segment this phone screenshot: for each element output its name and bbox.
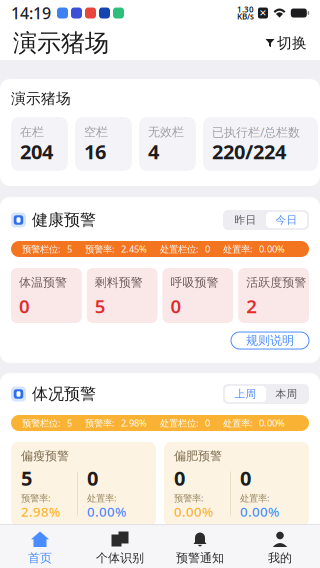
staticText: 220/224 bbox=[212, 138, 286, 165]
staticText: 预警率: bbox=[85, 417, 115, 429]
staticText: 处置栏位: bbox=[160, 417, 199, 429]
staticText: 2.45% bbox=[121, 243, 147, 255]
staticText: 预警栏位: bbox=[22, 243, 61, 255]
staticText: 规则说明 bbox=[246, 333, 294, 348]
staticText: 2.98% bbox=[121, 417, 147, 429]
button[interactable]: 切换 bbox=[265, 36, 307, 50]
staticText: 0.00% bbox=[174, 503, 213, 520]
staticText: 5 bbox=[67, 243, 72, 255]
staticText: 在栏 bbox=[20, 125, 44, 139]
staticText: 0 bbox=[205, 417, 210, 429]
staticText: 空栏 bbox=[84, 125, 108, 139]
staticText: 个体识别 bbox=[96, 551, 144, 565]
button[interactable]: 首页 bbox=[0, 525, 80, 568]
button[interactable]: 我的 bbox=[240, 525, 320, 568]
button[interactable]: 本周 bbox=[266, 386, 307, 402]
staticText: 无效栏 bbox=[148, 125, 184, 139]
staticText: 0 bbox=[87, 465, 98, 491]
staticText: 0.00% bbox=[87, 503, 126, 520]
staticText: 偏瘦预警 bbox=[21, 449, 69, 463]
staticText: 0.00% bbox=[259, 243, 285, 255]
staticText: 呼吸预警 bbox=[170, 275, 218, 290]
staticText: 5 bbox=[95, 294, 106, 318]
staticText: 0 bbox=[19, 294, 30, 318]
staticText: 活跃度预警 bbox=[246, 275, 306, 290]
staticText: 0 bbox=[170, 294, 181, 318]
staticText: 已执行栏/总栏数 bbox=[212, 124, 300, 140]
staticText: 我的 bbox=[268, 551, 292, 565]
staticText: 昨日 bbox=[234, 213, 256, 226]
staticText: 5 bbox=[67, 417, 72, 429]
staticText: 204 bbox=[20, 138, 53, 165]
button[interactable]: 上周 bbox=[225, 386, 266, 402]
staticText: 处置率: bbox=[223, 417, 253, 429]
staticText: 2 bbox=[246, 294, 257, 318]
staticText: 本周 bbox=[275, 387, 297, 400]
staticText: 4 bbox=[148, 138, 159, 165]
staticText: 1.30 bbox=[237, 4, 254, 15]
button[interactable]: 昨日 bbox=[225, 212, 266, 228]
staticText: 预警率: bbox=[85, 243, 115, 255]
staticText: 2.98% bbox=[21, 503, 60, 520]
staticText: 预警通知 bbox=[176, 551, 224, 565]
staticText: 5 bbox=[21, 465, 32, 491]
button[interactable]: 个体识别 bbox=[80, 525, 160, 568]
staticText: 演示猪场 bbox=[13, 28, 109, 58]
staticText: 体况预警 bbox=[32, 384, 96, 404]
staticText: 偏肥预警 bbox=[174, 449, 222, 463]
staticText: 处置率: bbox=[87, 492, 117, 504]
staticText: 健康预警 bbox=[32, 210, 96, 230]
staticText: 今日 bbox=[275, 213, 297, 226]
staticText: 0.00% bbox=[259, 417, 285, 429]
staticText: 0.00% bbox=[240, 503, 279, 520]
staticText: 0 bbox=[174, 465, 185, 491]
staticText: 14:19 bbox=[11, 2, 51, 24]
staticText: 上周 bbox=[234, 387, 256, 400]
staticText: 剩料预警 bbox=[95, 275, 143, 290]
staticText: 预警率: bbox=[174, 492, 204, 504]
button[interactable]: 今日 bbox=[266, 212, 307, 228]
staticText: ✕ bbox=[259, 8, 267, 18]
staticText: 0 bbox=[205, 243, 210, 255]
staticText: 处置栏位: bbox=[160, 243, 199, 255]
staticText: KB/s bbox=[237, 11, 254, 22]
staticText: 体温预警 bbox=[19, 275, 67, 290]
staticText: 预警栏位: bbox=[22, 417, 61, 429]
staticText: 处置率: bbox=[223, 243, 253, 255]
staticText: 切换 bbox=[277, 34, 307, 52]
staticText: 0 bbox=[240, 465, 251, 491]
staticText: 演示猪场 bbox=[11, 89, 71, 107]
staticText: 首页 bbox=[28, 551, 52, 565]
button[interactable]: 规则说明 bbox=[231, 332, 309, 349]
button[interactable]: 预警通知 bbox=[160, 525, 240, 568]
staticText: 处置率: bbox=[240, 492, 270, 504]
staticText: 16 bbox=[84, 138, 106, 165]
staticText: 预警率: bbox=[21, 492, 51, 504]
